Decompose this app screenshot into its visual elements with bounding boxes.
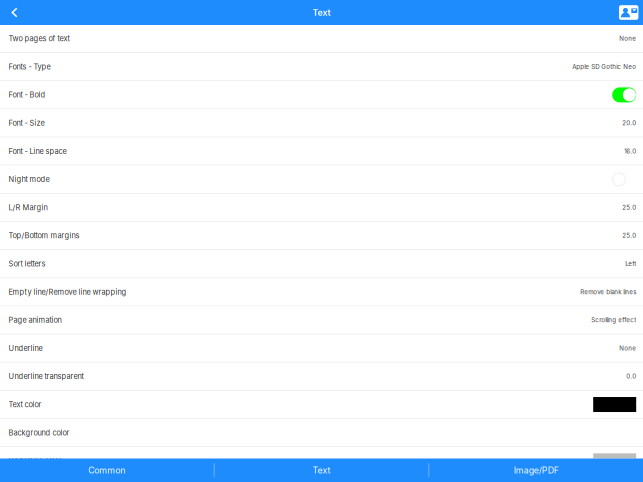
staticText: Background color — [8, 428, 69, 437]
button[interactable]: Image/PDF — [429, 458, 643, 482]
staticText: Sort letters — [8, 259, 45, 268]
staticText: Two pages of text — [8, 34, 69, 43]
staticText: 25.0 — [622, 204, 636, 211]
staticText: L/R Margin — [8, 203, 47, 212]
staticText: Empty line/Remove line wrapping — [8, 287, 126, 296]
button[interactable]: Two pages of text — [0, 25, 643, 53]
staticText: Font - Bold — [8, 90, 45, 99]
button[interactable]: Underline color — [0, 447, 643, 475]
button[interactable]: Page animation — [0, 306, 643, 335]
button[interactable]: Common — [0, 458, 214, 482]
staticText: Font - Line space — [8, 147, 66, 156]
staticText: Apple SD Gothic Neo — [572, 63, 636, 70]
staticText: Text color — [8, 400, 41, 409]
staticText: Fonts - Type — [8, 62, 50, 71]
staticText: 25.0 — [622, 232, 636, 239]
button[interactable]: Fonts - Type — [0, 53, 643, 81]
staticText: Remove blank lines — [580, 288, 636, 296]
staticText: Underline — [8, 344, 42, 353]
staticText: Font - Size — [8, 118, 44, 127]
staticText: Page animation — [8, 316, 61, 325]
button[interactable]: Underline — [0, 335, 643, 363]
button[interactable]: Top/Bottom margins — [0, 222, 643, 250]
staticText: None — [619, 35, 636, 42]
button[interactable]: Empty line/Remove line wrapping — [0, 278, 643, 306]
staticText: Text — [312, 465, 330, 475]
staticText: None — [619, 344, 636, 352]
staticText: Text — [312, 7, 330, 18]
button[interactable]: Font - Size — [0, 109, 643, 137]
button[interactable]: Underline transparent — [0, 363, 643, 391]
button[interactable]: Sort letters — [0, 250, 643, 278]
staticText: 16.0 — [624, 147, 636, 155]
button[interactable]: Back — [0, 0, 29, 25]
button[interactable]: Night mode — [0, 166, 643, 194]
staticText: 0.0 — [626, 373, 636, 380]
button[interactable]: Contacts — [614, 0, 643, 25]
staticText: Left — [625, 260, 636, 267]
button[interactable]: Font - Bold — [0, 81, 643, 109]
button[interactable]: Text — [215, 458, 428, 482]
staticText: Image/PDF — [514, 465, 559, 475]
button[interactable]: Font - Line space — [0, 138, 643, 166]
button[interactable]: Text color — [0, 391, 643, 419]
staticText: 20.0 — [622, 119, 636, 127]
staticText: Underline color — [8, 456, 61, 465]
staticText: Scrolling effect — [591, 316, 636, 324]
staticText: Top/Bottom margins — [8, 231, 79, 240]
staticText: Common — [88, 465, 125, 475]
staticText: Underline transparent — [8, 372, 83, 381]
button[interactable]: L/R Margin — [0, 194, 643, 222]
staticText: Night mode — [8, 175, 49, 184]
button[interactable]: Background color — [0, 419, 643, 447]
